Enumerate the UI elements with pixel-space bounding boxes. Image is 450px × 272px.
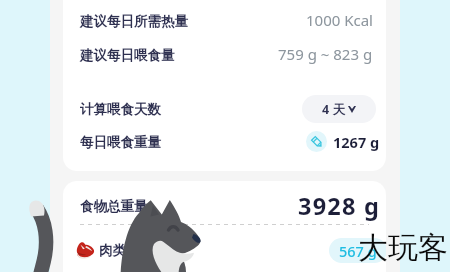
button[interactable]: Edit daily feeding weight	[306, 131, 380, 152]
staticText: 3928 g	[298, 190, 380, 222]
staticText: 759 g ~ 823 g	[278, 44, 373, 64]
staticText: 肉类	[99, 242, 126, 259]
staticText: 大玩客	[358, 229, 448, 267]
button[interactable]: 4 天	[302, 95, 376, 123]
staticText: 每日喂食重量	[80, 134, 161, 151]
staticText: 计算喂食天数	[80, 101, 161, 118]
staticText: 建议每日喂食量	[80, 47, 175, 64]
staticText: 建议每日所需热量	[80, 13, 188, 30]
staticText: 1000 Kcal	[306, 10, 373, 30]
other: Edit daily feeding weight	[306, 131, 327, 152]
staticText: 4 天	[322, 101, 345, 118]
staticText: 食物总重量	[80, 198, 148, 215]
staticText: 567 g	[339, 241, 377, 261]
staticText: 1267 g	[333, 132, 380, 152]
